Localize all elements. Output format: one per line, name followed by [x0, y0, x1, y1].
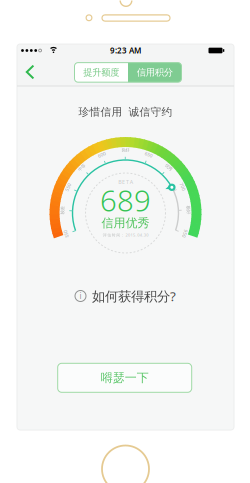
- staticText: 700: [178, 183, 187, 190]
- staticText: 350: [62, 230, 71, 238]
- staticText: 评估时间：2015.04.30: [103, 232, 148, 238]
- staticText: BETA: [118, 178, 133, 186]
- staticText: 优秀: [164, 164, 174, 171]
- staticText: 良好: [120, 147, 130, 153]
- staticText: 9:23 AM: [110, 45, 141, 56]
- staticText: 650: [144, 151, 153, 158]
- staticText: 嘚瑟一下: [101, 370, 149, 385]
- staticText: 较差: [58, 207, 68, 214]
- staticText: 中等: [77, 164, 87, 171]
- staticText: 极好: [183, 207, 193, 213]
- staticText: 信用优秀: [101, 216, 149, 230]
- staticText: 珍惜信用 诚信守约: [78, 105, 172, 118]
- staticText: 689: [100, 180, 151, 219]
- staticText: 信用积分: [137, 67, 173, 78]
- button[interactable]: Back: [20, 62, 40, 82]
- staticText: 600: [97, 151, 106, 158]
- button[interactable]: i: [75, 287, 176, 305]
- staticText: 如何获得积分?: [92, 287, 176, 305]
- staticText: 950: [181, 230, 190, 237]
- staticText: i: [79, 291, 81, 301]
- staticText: 550: [63, 184, 72, 191]
- button[interactable]: 嘚瑟一下: [58, 363, 192, 392]
- staticText: 提升额度: [83, 67, 119, 78]
- button[interactable]: 提升额度: [74, 63, 128, 82]
- button[interactable]: 信用积分: [128, 63, 181, 82]
